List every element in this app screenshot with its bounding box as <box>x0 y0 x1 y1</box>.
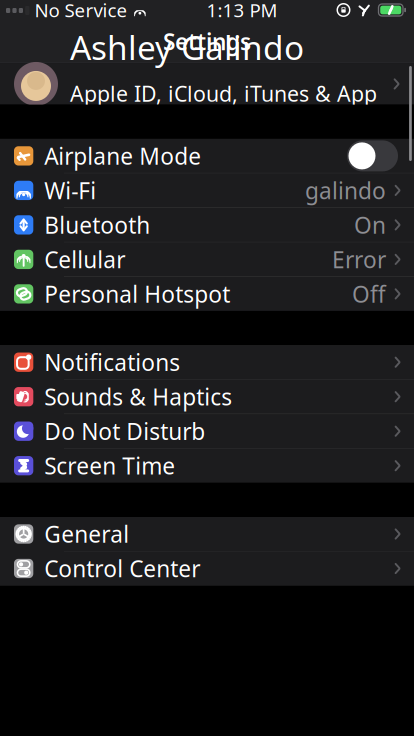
button[interactable]: Cellular <box>0 242 414 276</box>
staticText: Control Center <box>44 553 200 583</box>
button[interactable]: Sounds & Haptics <box>0 380 414 414</box>
button[interactable]: Wi-Fi <box>0 173 414 207</box>
staticText: Apple ID, iCloud, iTunes & App Store <box>70 79 377 136</box>
staticText: Off <box>352 279 386 309</box>
staticText: Ashley Galindo <box>70 25 304 69</box>
button[interactable]: Ashley Galindo <box>0 63 414 105</box>
staticText: 1:13 PM <box>206 0 277 22</box>
staticText: Sounds & Haptics <box>44 382 232 412</box>
staticText: Personal Hotspot <box>44 279 230 309</box>
button[interactable]: Control Center <box>0 551 414 585</box>
button[interactable]: Notifications <box>0 345 414 379</box>
staticText: Settings <box>163 26 251 56</box>
staticText: On <box>354 210 386 240</box>
staticText: Notifications <box>44 347 180 377</box>
staticText: No Service <box>34 0 127 22</box>
button[interactable]: Airplane Mode <box>0 139 414 173</box>
button[interactable]: General <box>0 517 414 551</box>
staticText: Airplane Mode <box>44 141 201 171</box>
staticText: General <box>44 519 129 549</box>
button[interactable]: Do Not Disturb <box>0 414 414 448</box>
staticText: galindo <box>305 175 386 205</box>
button[interactable]: Screen Time <box>0 449 414 483</box>
staticText: Wi-Fi <box>44 175 96 205</box>
staticText: Do Not Disturb <box>44 416 205 446</box>
staticText: Screen Time <box>44 451 175 481</box>
staticText: Error <box>332 244 386 274</box>
button[interactable]: Bluetooth <box>0 208 414 242</box>
staticText: Bluetooth <box>44 210 150 240</box>
staticText: Cellular <box>44 244 125 274</box>
button[interactable]: Personal Hotspot <box>0 277 414 311</box>
